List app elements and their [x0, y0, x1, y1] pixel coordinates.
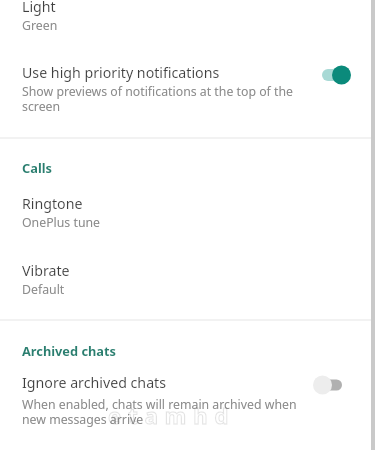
staticText: Green [22, 17, 58, 34]
button[interactable]: Ringtone [0, 191, 375, 233]
button[interactable]: Light [0, 0, 375, 43]
staticText: Use high priority notifications [22, 63, 220, 82]
button[interactable]: Use high priority notifications [0, 57, 375, 119]
staticText: Light [22, 0, 56, 16]
staticText: Ignore archived chats [22, 373, 167, 392]
staticText: Ringtone [22, 194, 83, 213]
staticText: etamhd [108, 400, 236, 430]
staticText: Vibrate [22, 261, 70, 280]
button[interactable]: Vibrate [0, 258, 375, 300]
button[interactable]: Use high priority notifications toggle, … [316, 63, 356, 87]
staticText: When enabled, chats will remain archived… [22, 396, 306, 428]
staticText: Show previews of notifications at the to… [22, 83, 314, 115]
button[interactable]: Ignore archived chats toggle, off [308, 373, 348, 397]
staticText: Default [22, 281, 65, 298]
button[interactable]: Ignore archived chats [0, 370, 375, 432]
staticText: OnePlus tune [22, 214, 101, 231]
staticText: Archived chats [22, 342, 116, 359]
staticText: Calls [22, 159, 52, 176]
